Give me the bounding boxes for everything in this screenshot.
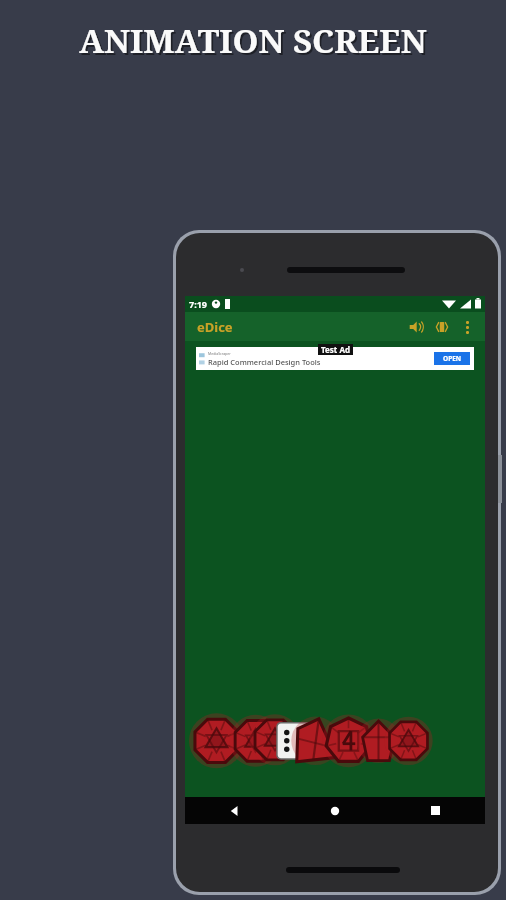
staticText: eDice [197, 318, 233, 336]
button[interactable]: Vibration [429, 314, 455, 340]
staticText: Rapid Commercial Design Tools [208, 357, 321, 367]
button[interactable]: Sound [403, 314, 429, 340]
button[interactable]: MediaScraper [196, 347, 474, 370]
button[interactable]: Home [285, 797, 385, 824]
staticText: 7:19 [189, 298, 207, 310]
staticText: ANIMATION SCREEN [81, 20, 429, 65]
staticText: OPEN [443, 354, 462, 363]
button[interactable]: More options [455, 315, 479, 339]
button[interactable]: Back [185, 797, 285, 824]
staticText: MediaScraper [208, 351, 231, 356]
staticText: Test Ad [321, 344, 350, 355]
button[interactable]: Recent apps [385, 797, 485, 824]
staticText: ANIMATION SCREEN [79, 18, 427, 63]
button[interactable]: OPEN [434, 352, 470, 365]
